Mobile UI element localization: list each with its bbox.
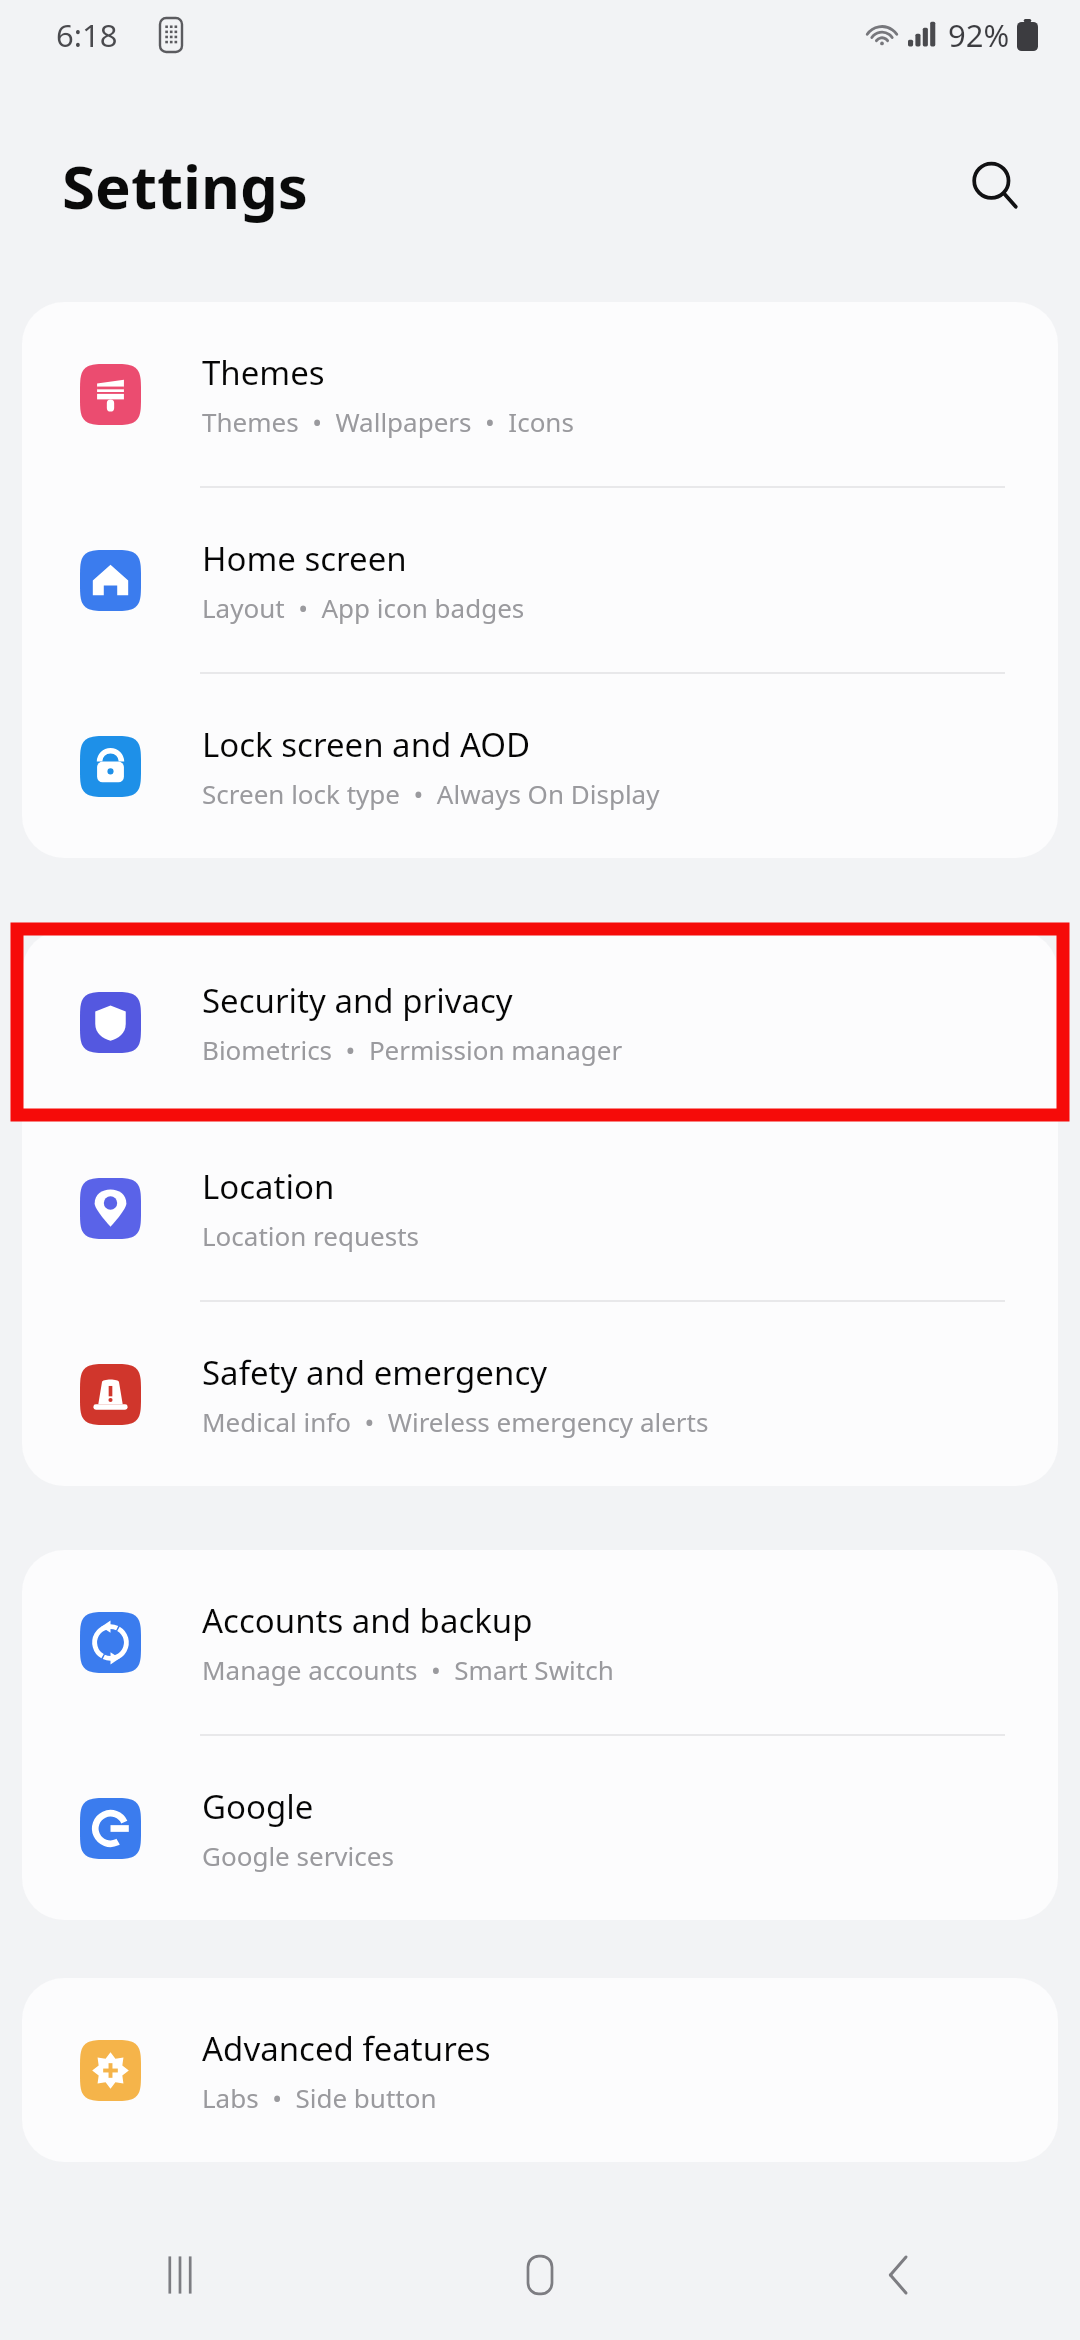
- staticText: Medical info • Wireless emergency alerts: [202, 1404, 709, 1439]
- button[interactable]: Lock screen and AOD: [22, 674, 1058, 858]
- button[interactable]: Location: [22, 1116, 1058, 1302]
- staticText: 92%: [948, 14, 1010, 56]
- button[interactable]: Home screen: [22, 488, 1058, 674]
- staticText: Google services: [202, 1838, 394, 1873]
- staticText: Themes: [202, 350, 325, 395]
- button[interactable]: Themes: [22, 302, 1058, 488]
- staticText: Settings: [62, 145, 308, 227]
- button[interactable]: Accounts and backup: [22, 1550, 1058, 1736]
- button[interactable]: Security and privacy: [22, 930, 1058, 1116]
- button[interactable]: Advanced features: [22, 1978, 1058, 2162]
- staticText: 6:18: [56, 14, 118, 56]
- staticText: Security and privacy: [202, 978, 513, 1023]
- staticText: Screen lock type • Always On Display: [202, 776, 660, 811]
- button[interactable]: Recents: [0, 2210, 360, 2340]
- staticText: Google: [202, 1784, 314, 1829]
- button[interactable]: Search: [952, 143, 1038, 229]
- staticText: Location requests: [202, 1218, 419, 1253]
- staticText: Labs • Side button: [202, 2080, 437, 2115]
- staticText: Accounts and backup: [202, 1598, 533, 1643]
- staticText: Advanced features: [202, 2026, 491, 2071]
- staticText: Safety and emergency: [202, 1350, 548, 1395]
- button[interactable]: Back: [720, 2210, 1080, 2340]
- staticText: Lock screen and AOD: [202, 722, 531, 767]
- staticText: Themes • Wallpapers • Icons: [202, 404, 574, 439]
- button[interactable]: Safety and emergency: [22, 1302, 1058, 1486]
- staticText: Manage accounts • Smart Switch: [202, 1652, 614, 1687]
- button[interactable]: Home: [360, 2210, 720, 2340]
- staticText: Layout • App icon badges: [202, 590, 525, 625]
- button[interactable]: Google: [22, 1736, 1058, 1920]
- staticText: Location: [202, 1164, 335, 1209]
- staticText: Home screen: [202, 536, 407, 581]
- staticText: Biometrics • Permission manager: [202, 1032, 623, 1067]
